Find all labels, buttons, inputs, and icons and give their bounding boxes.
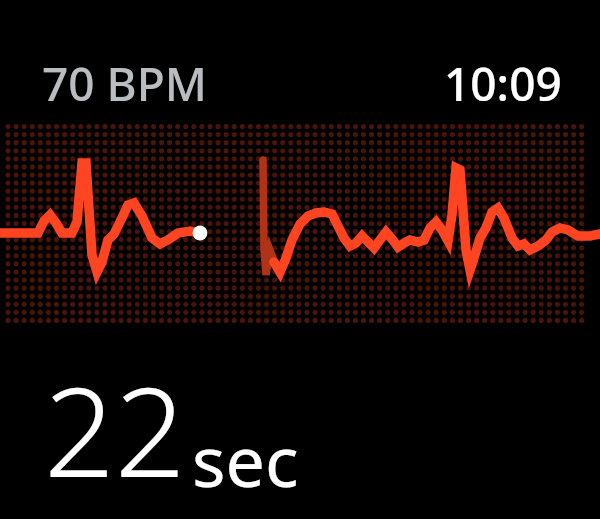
- button[interactable]: 10:09: [444, 52, 562, 115]
- button[interactable]: ECG waveform: [0, 122, 600, 326]
- staticText: 10:09: [444, 52, 562, 115]
- staticText: sec: [192, 412, 299, 507]
- staticText: 22: [44, 344, 186, 513]
- button[interactable]: 70 BPM: [42, 52, 207, 115]
- staticText: 70 BPM: [42, 52, 207, 115]
- button[interactable]: 22: [44, 344, 299, 513]
